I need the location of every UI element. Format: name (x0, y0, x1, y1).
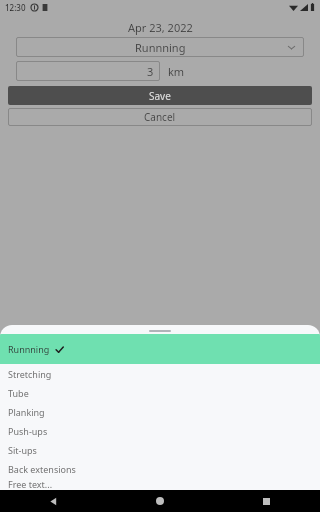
staticText: 3 (147, 64, 154, 79)
button[interactable]: Tube (0, 383, 320, 402)
staticText: 12:30 (5, 2, 26, 13)
button[interactable]: Save (8, 86, 312, 105)
staticText: Free text... (8, 478, 53, 490)
button[interactable]: Free text... (0, 478, 320, 490)
staticText: Planking (8, 406, 45, 418)
button[interactable]: Push-ups (0, 421, 320, 440)
button[interactable]: Planking (0, 402, 320, 421)
staticText: Cancel (144, 110, 176, 124)
staticText: Back extensions (8, 463, 76, 475)
button[interactable]: Back extensions (0, 459, 320, 478)
staticText: Push-ups (8, 425, 48, 437)
staticText: Stretching (8, 368, 52, 380)
button[interactable]: Runnning (16, 37, 304, 57)
button[interactable]: Recent apps (213, 490, 320, 512)
button[interactable]: 3 (16, 61, 160, 81)
staticText: Tube (8, 387, 29, 399)
staticText: Runnning (8, 343, 50, 355)
button[interactable]: Apr 23, 2022 (0, 19, 320, 35)
staticText: Save (149, 89, 171, 103)
staticText: Sit-ups (8, 444, 37, 456)
staticText: Apr 23, 2022 (128, 20, 193, 35)
button[interactable]: Back (0, 490, 106, 512)
button[interactable]: Runnning (0, 334, 320, 364)
button[interactable]: Sit-ups (0, 440, 320, 459)
button[interactable]: Stretching (0, 364, 320, 383)
button[interactable]: Home (106, 490, 213, 512)
staticText: Runnning (135, 40, 186, 55)
staticText: km (168, 64, 185, 79)
button[interactable]: Cancel (8, 108, 312, 126)
